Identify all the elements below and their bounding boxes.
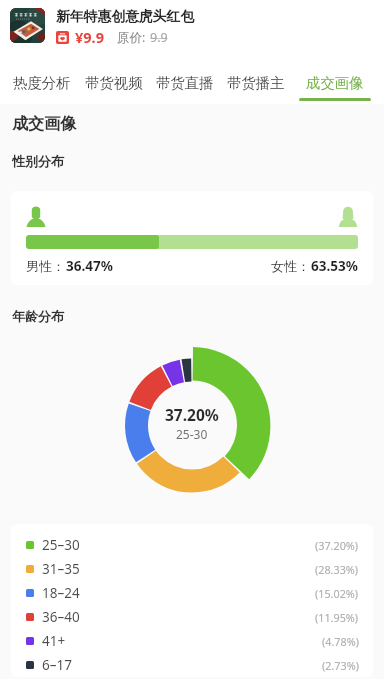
staticText: (2.73%) xyxy=(322,658,359,673)
staticText: 63.53% xyxy=(311,257,358,275)
button[interactable]: 带货播主 xyxy=(227,52,285,104)
staticText: (37.20%) xyxy=(315,538,359,553)
other: Shop xyxy=(56,31,69,44)
staticText: 带货播主 xyxy=(227,74,285,92)
button[interactable]: 带货视频 xyxy=(85,52,143,104)
button[interactable]: 热度分析 xyxy=(13,52,71,104)
staticText: 41+ xyxy=(42,632,66,650)
staticText: 成交画像 xyxy=(12,114,76,134)
button[interactable]: 6–17 xyxy=(26,653,359,677)
staticText: 成交画像 xyxy=(306,74,364,92)
staticText: (4.78%) xyxy=(322,634,359,649)
staticText: 性别分布 xyxy=(12,153,64,169)
button[interactable]: 36–40 xyxy=(26,605,359,629)
staticText: 36–40 xyxy=(42,608,80,626)
button[interactable]: 18–24 xyxy=(26,581,359,605)
staticText: 36.47% xyxy=(66,257,113,275)
staticText: 热度分析 xyxy=(13,74,71,92)
staticText: 新年特惠创意虎头红包 xyxy=(56,8,194,25)
staticText: 6–17 xyxy=(42,656,72,674)
button[interactable]: 41+ xyxy=(26,629,359,653)
staticText: 37.20% xyxy=(165,404,219,425)
staticText: 9.9 xyxy=(150,29,168,46)
button[interactable]: 31–35 xyxy=(26,557,359,581)
staticText: 25-30 xyxy=(176,426,208,442)
staticText: (11.95%) xyxy=(315,610,359,625)
staticText: 男性： xyxy=(26,258,65,274)
button[interactable]: 带货直播 xyxy=(156,52,214,104)
button[interactable]: 25–30 xyxy=(26,533,359,557)
staticText: 带货直播 xyxy=(156,74,214,92)
button[interactable]: 成交画像 xyxy=(299,52,371,104)
staticText: 31–35 xyxy=(42,560,80,578)
staticText: (15.02%) xyxy=(315,586,359,601)
staticText: 女性： xyxy=(271,258,310,274)
staticText: 18–24 xyxy=(42,584,80,602)
staticText: 带货视频 xyxy=(85,74,143,92)
staticText: 原价: xyxy=(117,29,146,46)
staticText: 年龄分布 xyxy=(12,308,64,324)
staticText: ¥9.9 xyxy=(75,27,104,47)
staticText: 25–30 xyxy=(42,536,80,554)
staticText: (28.33%) xyxy=(315,562,359,577)
